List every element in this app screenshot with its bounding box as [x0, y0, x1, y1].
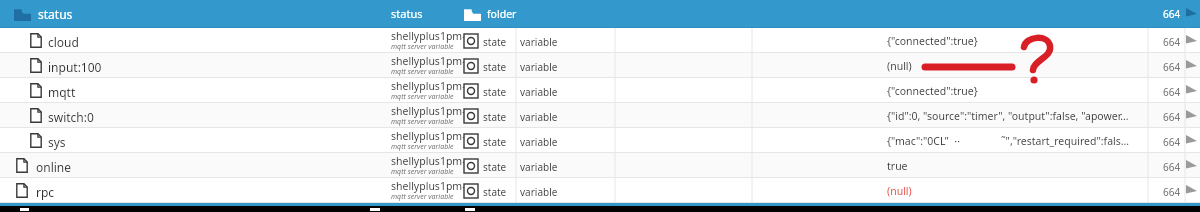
- staticText: mqtt server variable: [391, 92, 454, 102]
- staticText: variable: [520, 185, 558, 199]
- staticText: online: [36, 159, 72, 175]
- staticText: status: [391, 6, 423, 21]
- staticText: switch:0: [48, 109, 94, 125]
- staticText: mqtt server variable: [391, 67, 454, 77]
- staticText: 664: [1163, 160, 1181, 174]
- staticText: variable: [520, 35, 558, 49]
- staticText: mqtt server variable: [391, 117, 454, 127]
- staticText: state: [483, 110, 507, 124]
- staticText: {"id":0, "source":"timer", "output":fals…: [887, 109, 1129, 123]
- staticText: status: [38, 6, 73, 22]
- staticText: state: [483, 135, 507, 149]
- staticText: variable: [520, 110, 558, 124]
- staticText: mqtt server variable: [391, 142, 454, 152]
- staticText: mqtt server variable: [391, 42, 454, 52]
- button[interactable]: online: [0, 153, 1200, 178]
- staticText: 664: [1163, 135, 1181, 149]
- staticText: input:100: [48, 59, 102, 75]
- staticText: true: [887, 159, 908, 173]
- staticText: 664: [1163, 110, 1181, 124]
- staticText: state: [483, 35, 507, 49]
- staticText: variable: [520, 160, 558, 174]
- staticText: mqtt server variable: [391, 192, 454, 202]
- staticText: folder: [487, 7, 517, 21]
- staticText: state: [483, 60, 507, 74]
- staticText: 664: [1163, 185, 1181, 199]
- staticText: shellyplus1pm-: [391, 104, 466, 118]
- staticText: shellyplus1pm-: [391, 179, 466, 193]
- staticText: 664: [1163, 7, 1181, 21]
- staticText: variable: [520, 60, 558, 74]
- staticText: shellyplus1pm-: [391, 54, 466, 68]
- staticText: variable: [520, 135, 558, 149]
- staticText: state: [483, 85, 507, 99]
- button[interactable]: rpc: [0, 178, 1200, 203]
- button[interactable]: cloud: [0, 28, 1200, 53]
- staticText: state: [483, 160, 507, 174]
- staticText: sys: [48, 134, 66, 150]
- staticText: shellyplus1pm-: [391, 79, 466, 93]
- button[interactable]: switch:0: [0, 103, 1200, 128]
- staticText: state: [483, 185, 507, 199]
- staticText: rpc: [36, 184, 55, 200]
- staticText: 664: [1163, 35, 1181, 49]
- button[interactable]: status: [0, 0, 1200, 28]
- staticText: 664: [1163, 85, 1181, 99]
- staticText: {"connected":true}: [887, 84, 978, 98]
- staticText: mqtt server variable: [391, 167, 454, 177]
- staticText: shellyplus1pm-: [391, 154, 466, 168]
- button[interactable]: sys: [0, 128, 1200, 153]
- staticText: variable: [520, 85, 558, 99]
- staticText: mqtt: [48, 84, 76, 100]
- staticText: shellyplus1pm-: [391, 129, 466, 143]
- staticText: 664: [1163, 60, 1181, 74]
- button[interactable]: mqtt: [0, 78, 1200, 103]
- button[interactable]: input:100: [0, 53, 1200, 78]
- staticText: shellyplus1pm-: [391, 29, 466, 43]
- staticText: {"mac":"0CL" ·· ˜","restart_required":fa…: [887, 134, 1130, 148]
- staticText: {"connected":true}: [887, 34, 978, 48]
- staticText: (null): [887, 59, 912, 73]
- staticText: cloud: [48, 34, 79, 50]
- staticText: (null): [887, 184, 912, 198]
